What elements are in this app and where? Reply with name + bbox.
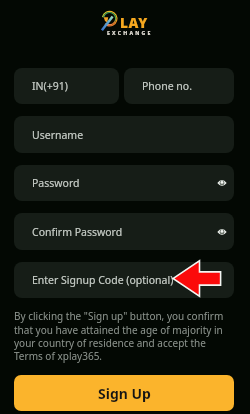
button[interactable]: Show password [214, 224, 230, 240]
button[interactable]: Enter Signup Code (optional) [14, 262, 234, 298]
staticText: Sign Up [98, 384, 151, 403]
staticText: LAY [120, 13, 148, 32]
button[interactable]: Sign Up [14, 375, 234, 411]
button[interactable]: Show password [214, 175, 230, 191]
staticText: IN(+91) [32, 79, 68, 93]
staticText: Confirm Password [32, 225, 123, 239]
button[interactable]: IN(+91) [14, 68, 119, 104]
button[interactable]: Phone no. [124, 68, 234, 104]
staticText: Phone no. [142, 79, 192, 93]
staticText: Enter Signup Code (optional) [32, 273, 174, 287]
button[interactable]: Username [14, 116, 234, 153]
staticText: By clicking the "Sign up" button, you co… [14, 309, 234, 363]
button[interactable]: Password [14, 165, 234, 201]
staticText: Username [32, 128, 84, 142]
staticText: Password [32, 176, 80, 190]
staticText: EXCHANGE [107, 29, 153, 36]
button[interactable]: Confirm Password [14, 213, 234, 250]
